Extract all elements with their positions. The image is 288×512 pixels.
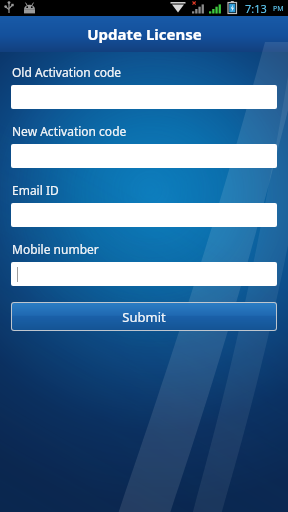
button[interactable] xyxy=(11,144,277,168)
staticText: Mobile number xyxy=(12,241,99,257)
button[interactable] xyxy=(11,203,277,227)
staticText: New Activation code xyxy=(12,123,127,139)
staticText: Old Activation code xyxy=(12,64,122,80)
button[interactable] xyxy=(11,85,277,109)
button[interactable] xyxy=(11,262,277,286)
staticText: PM xyxy=(273,4,284,14)
staticText: 7:13 xyxy=(245,1,267,16)
staticText: Submit xyxy=(122,308,166,326)
staticText: Email ID xyxy=(12,182,59,198)
staticText: Update License xyxy=(87,24,202,44)
button[interactable]: Submit xyxy=(12,303,276,330)
